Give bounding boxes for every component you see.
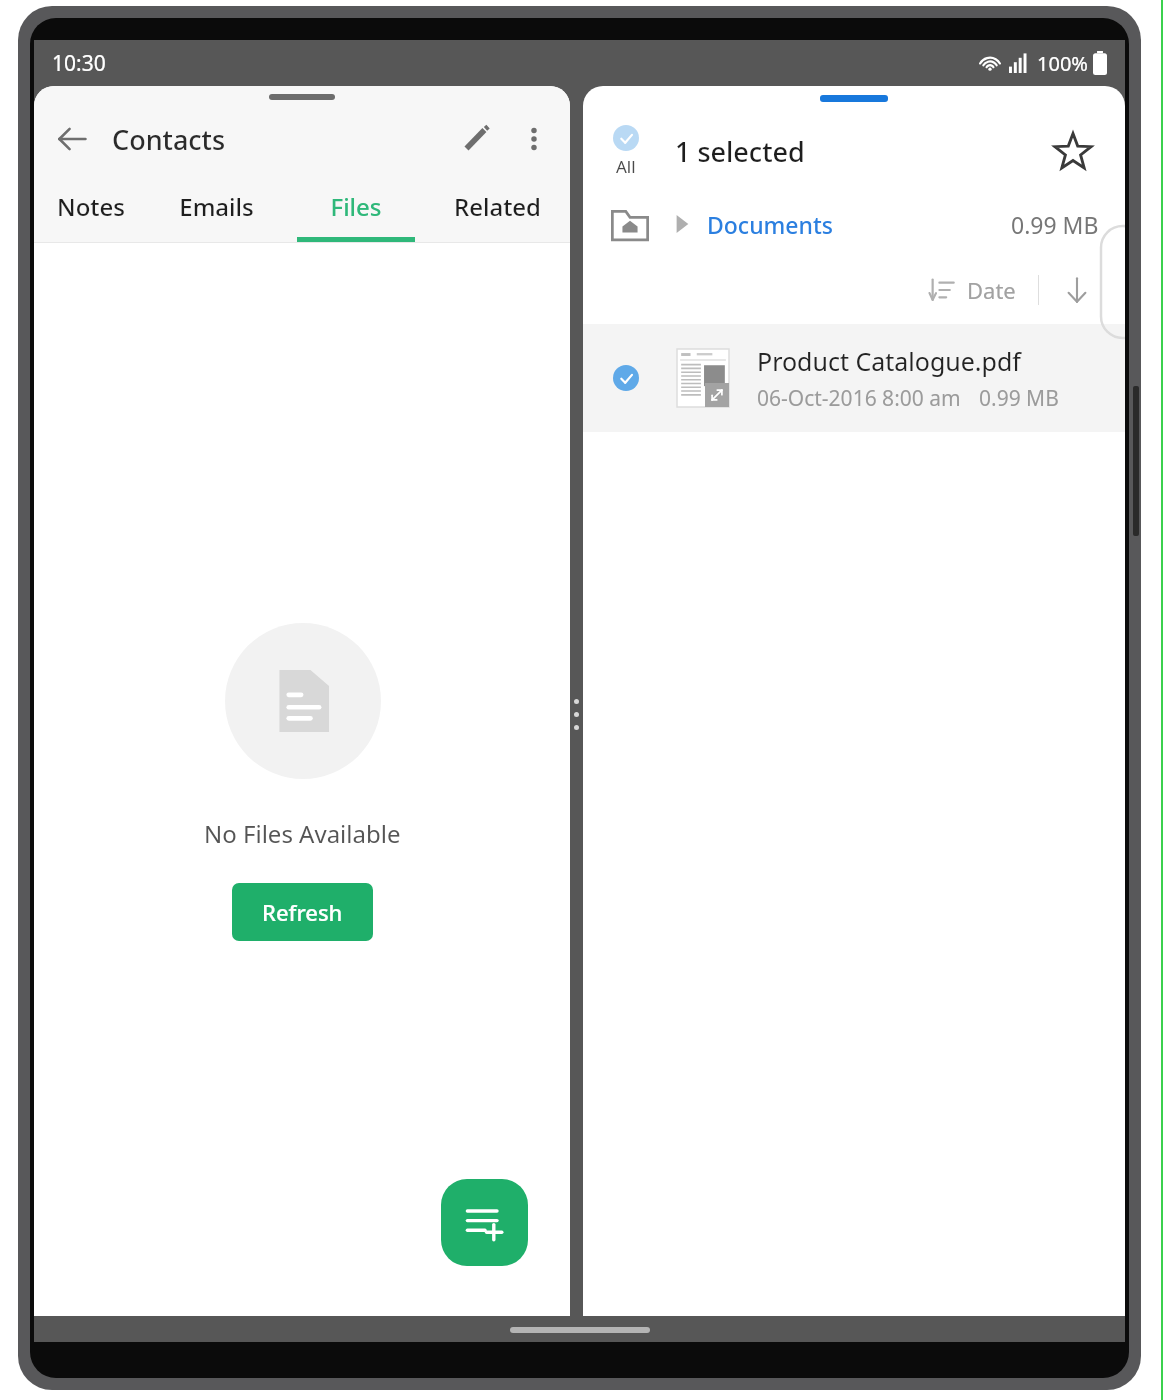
staticText: 0.99 MB: [1011, 209, 1099, 240]
button[interactable]: All: [611, 123, 641, 180]
button[interactable]: Emails: [147, 170, 286, 242]
button[interactable]: Product Catalogue.pdf: [583, 324, 1125, 432]
staticText: Date: [967, 275, 1016, 305]
staticText: No Files Available: [204, 817, 401, 850]
button[interactable]: More options: [510, 115, 558, 163]
button[interactable]: Documents: [609, 192, 1099, 256]
staticText: Notes: [57, 190, 125, 223]
button[interactable]: Add file: [441, 1179, 528, 1266]
button[interactable]: Date: [923, 269, 1022, 311]
staticText: 100%: [1037, 50, 1088, 77]
staticText: 0.99 MB: [979, 384, 1059, 413]
button[interactable]: Refresh: [232, 883, 373, 941]
staticText: Related: [454, 190, 541, 223]
staticText: Contacts: [112, 121, 226, 158]
staticText: Files: [330, 190, 382, 223]
button[interactable]: Notes: [34, 170, 147, 242]
staticText: Product Catalogue.pdf: [757, 344, 1021, 378]
staticText: Documents: [707, 209, 833, 240]
button[interactable]: Sort descending: [1055, 268, 1099, 312]
staticText: 06-Oct-2016 8:00 am: [757, 384, 961, 413]
staticText: 10:30: [52, 49, 106, 78]
staticText: All: [616, 155, 636, 178]
staticText: Refresh: [262, 897, 343, 927]
staticText: 1 selected: [675, 133, 805, 170]
button[interactable]: Related: [425, 170, 570, 242]
button[interactable]: Edit: [450, 113, 502, 165]
button[interactable]: Back: [46, 113, 98, 165]
button[interactable]: Files: [286, 170, 425, 242]
button[interactable]: Favourite: [1047, 125, 1099, 177]
staticText: Emails: [179, 190, 254, 223]
